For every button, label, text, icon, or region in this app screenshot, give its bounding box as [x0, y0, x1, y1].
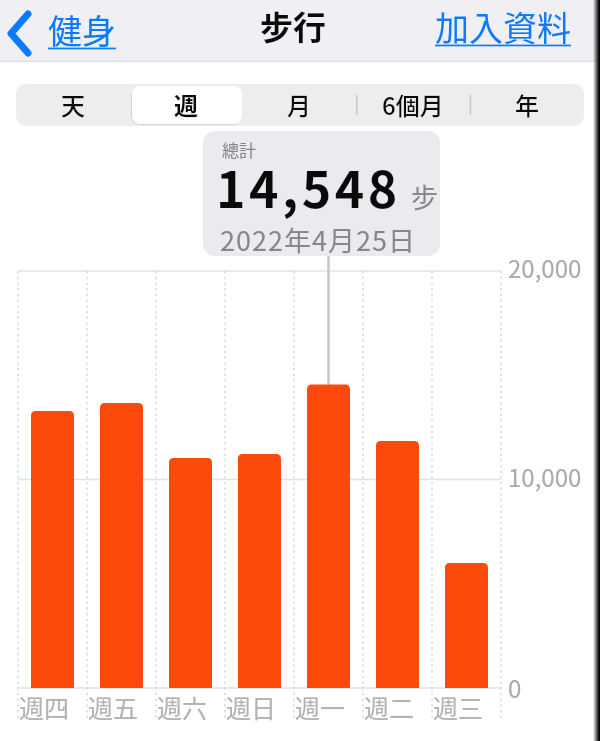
staticText: 10,000 [508, 459, 582, 494]
staticText: 總計 [222, 137, 256, 162]
button[interactable]: 週 [129, 84, 242, 126]
staticText: 健身 [48, 5, 116, 54]
staticText: 步行 [260, 2, 326, 50]
button[interactable]: 年 [470, 84, 584, 126]
button[interactable]: 加入資料 [428, 0, 578, 57]
staticText: 步 [411, 177, 438, 216]
staticText: 14,548 [216, 150, 401, 222]
staticText: 週日 [226, 689, 277, 725]
button[interactable]: 6個月 [356, 84, 470, 126]
staticText: 週二 [364, 689, 415, 725]
staticText: 年 [515, 87, 539, 122]
staticText: 天 [61, 87, 85, 122]
staticText: 週五 [88, 689, 139, 725]
staticText: 6個月 [382, 87, 444, 122]
staticText: 2022年4月25日 [220, 220, 416, 259]
button[interactable]: 月 [242, 84, 356, 126]
staticText: 20,000 [508, 250, 582, 285]
staticText: 週六 [157, 689, 208, 725]
button[interactable]: 天 [16, 84, 129, 126]
staticText: 週一 [295, 689, 346, 725]
staticText: 週三 [433, 689, 484, 725]
staticText: 週 [174, 87, 198, 122]
button[interactable]: 健身 [6, 0, 126, 62]
staticText: 加入資料 [435, 2, 571, 51]
staticText: 週四 [19, 689, 70, 725]
staticText: 0 [508, 670, 522, 705]
staticText: 月 [287, 87, 311, 122]
